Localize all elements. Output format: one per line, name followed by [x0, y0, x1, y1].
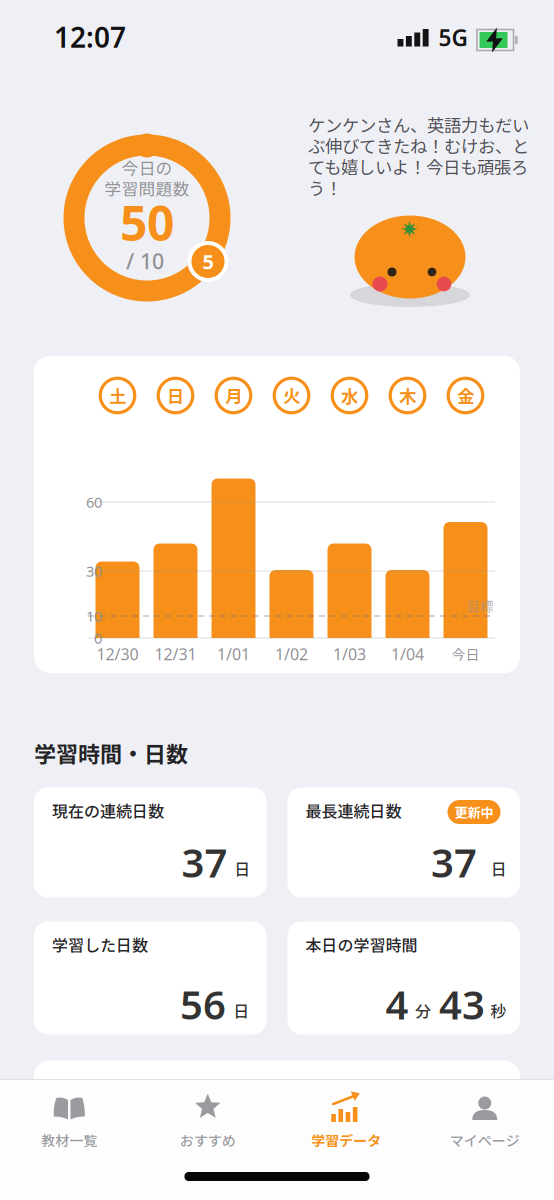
staticText: ぶ伸びてきたね！むけお、と [308, 133, 529, 158]
staticText: 43 [439, 977, 485, 1030]
staticText: 水 [341, 383, 358, 408]
staticText: 1/01 [217, 643, 250, 665]
staticText: 木 [399, 383, 416, 408]
staticText: 12:07 [54, 18, 126, 56]
staticText: 1/03 [333, 643, 366, 665]
staticText: う！ [308, 175, 342, 200]
staticText: 日 [234, 857, 250, 880]
staticText: 本日の学習時間 [305, 933, 417, 956]
staticText: 60 [86, 492, 102, 512]
staticText: 1/04 [391, 643, 424, 665]
staticText: 5G [438, 22, 467, 52]
staticText: 0 [94, 628, 102, 648]
staticText: 現在の連続日数 [52, 799, 164, 822]
staticText: 56 [180, 977, 226, 1030]
staticText: 4 [385, 977, 408, 1030]
staticText: 金 [457, 383, 474, 408]
button[interactable]: 教材一覧 [0, 0, 554, 1200]
staticText: 最長連続日数 [305, 799, 401, 822]
staticText: 教材一覧 [41, 1130, 97, 1150]
staticText: 更新中 [454, 802, 493, 822]
staticText: 火 [283, 383, 300, 408]
button[interactable]: おすすめ [0, 0, 554, 1200]
staticText: 10 [86, 606, 102, 626]
staticText: 土 [109, 383, 126, 408]
staticText: おすすめ [180, 1130, 236, 1150]
staticText: 学習した日数 [52, 933, 148, 956]
staticText: 12/30 [96, 643, 138, 665]
button[interactable]: 学習データ [0, 0, 554, 1200]
staticText: マイページ [450, 1130, 520, 1150]
staticText: 37 [181, 835, 227, 888]
staticText: 日 [167, 383, 184, 408]
staticText: 学習問題数 [104, 176, 189, 200]
staticText: ても嬉しいよ！今日も頑張ろ [308, 154, 528, 179]
staticText: ケンケンさん、英語力もだい [308, 112, 529, 137]
staticText: 秒 [490, 999, 506, 1022]
staticText: 日 [233, 999, 249, 1022]
staticText: 学習データ [311, 1130, 381, 1150]
staticText: 学習時間・日数 [34, 737, 188, 769]
staticText: 目標 [467, 596, 493, 616]
staticText: 月 [225, 383, 242, 408]
staticText: 30 [86, 561, 102, 581]
staticText: / 10 [126, 247, 164, 275]
staticText: 12/31 [154, 643, 196, 665]
staticText: 日 [491, 857, 507, 880]
staticText: 37 [431, 835, 477, 888]
staticText: 分 [415, 999, 431, 1022]
staticText: 1/02 [275, 643, 308, 665]
staticText: 5 [202, 248, 213, 275]
staticText: 今日 [451, 644, 479, 664]
staticText: 今日の [121, 155, 172, 179]
staticText: 50 [120, 191, 174, 254]
button[interactable]: マイページ [0, 0, 554, 1200]
